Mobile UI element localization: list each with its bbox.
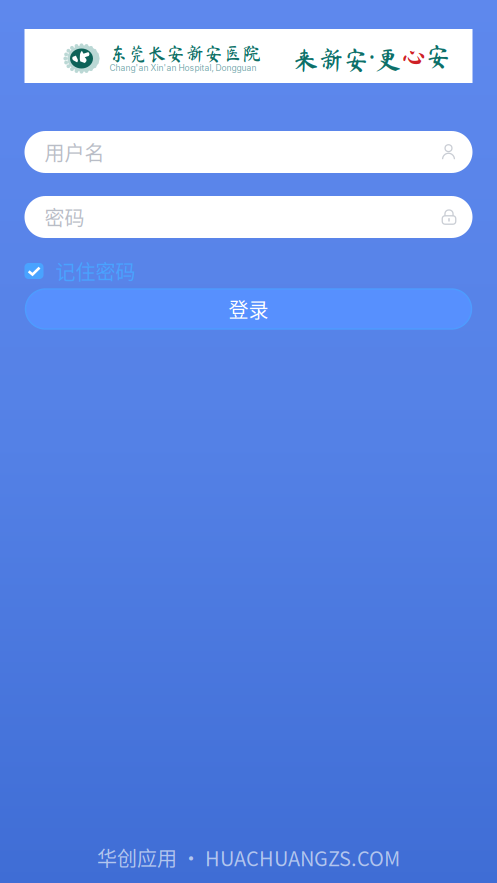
button[interactable]: 登录	[25, 289, 471, 329]
button[interactable]: 记住密码	[24, 263, 472, 279]
staticText: 记住密码	[55, 256, 135, 285]
staticText: 用户名	[44, 137, 104, 166]
staticText: 登录	[228, 294, 268, 323]
staticText: 东莞长安新安医院	[109, 44, 261, 63]
staticText: Chang'an Xin'an Hospital, Dongguan	[109, 63, 256, 73]
staticText: 密码	[44, 202, 84, 231]
staticText: 心	[400, 43, 425, 69]
staticText: 来新安·更	[293, 39, 400, 73]
staticText: 安	[425, 43, 450, 69]
staticText: 华创应用 • HUACHUANGZS.COM	[97, 843, 400, 872]
